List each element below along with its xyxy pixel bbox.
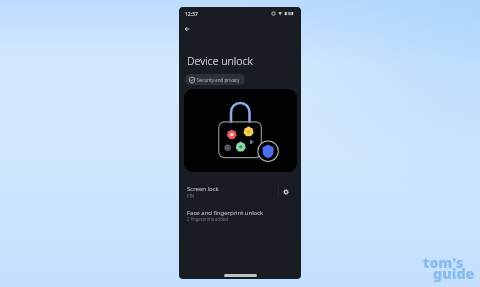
staticText: Face and fingerprint unlock (187, 208, 264, 216)
staticText: Device unlock (187, 54, 253, 68)
staticText: PIN (187, 193, 195, 199)
button[interactable]: Security and privacy (185, 74, 245, 85)
staticText: Screen lock (187, 184, 219, 192)
button[interactable]: Screen lock settings (279, 185, 293, 199)
button[interactable]: Screen lock (179, 179, 301, 206)
button[interactable]: Face and fingerprint unlock (179, 207, 301, 234)
staticText: guide (433, 264, 475, 283)
staticText: Security and privacy (197, 77, 240, 83)
staticText: 2 fingerprints added (187, 216, 228, 222)
staticText: 12:37 (185, 11, 198, 18)
button[interactable]: Back (179, 21, 195, 37)
staticText: tom's (423, 253, 464, 272)
